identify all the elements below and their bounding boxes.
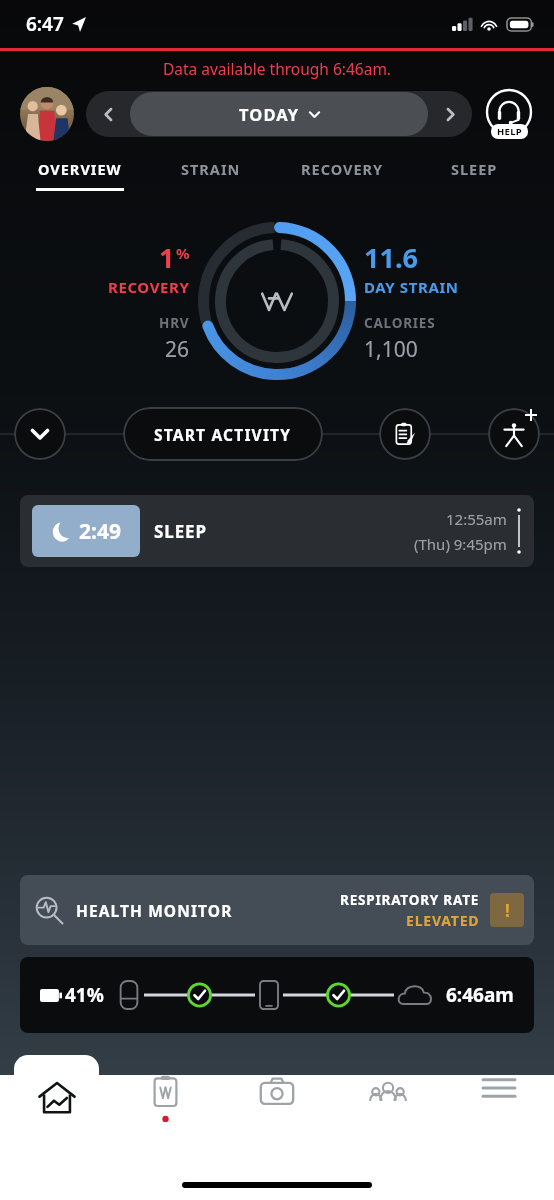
button[interactable] <box>197 221 357 381</box>
staticText: 2:49 <box>79 517 121 546</box>
button[interactable]: RECOVERY <box>276 159 408 191</box>
button[interactable]: STRAIN <box>145 159 276 191</box>
button[interactable]: Expand <box>14 408 66 460</box>
button[interactable]: Profile <box>20 87 74 141</box>
button[interactable]: 2:49 <box>20 495 534 567</box>
staticText: SLEEP <box>154 520 207 543</box>
button[interactable]: Community <box>332 1075 443 1137</box>
button[interactable]: SLEEP <box>408 159 540 191</box>
staticText: 26 <box>165 335 190 364</box>
staticText: STRAIN <box>181 159 241 179</box>
staticText: 6:47 <box>26 11 64 37</box>
staticText: Data available through 6:46am. <box>0 58 554 79</box>
staticText: (Thu) 9:45pm <box>414 534 507 554</box>
staticText: START ACTIVITY <box>154 424 292 445</box>
button[interactable]: Journal <box>110 1075 221 1137</box>
staticText: ! <box>505 899 510 922</box>
staticText: 6:46am <box>446 982 514 1008</box>
button[interactable]: Home <box>14 1055 99 1137</box>
staticText: 11.6 <box>364 239 418 276</box>
button[interactable]: OVERVIEW <box>14 159 145 191</box>
staticText: RECOVERY <box>301 159 384 179</box>
button[interactable]: Menu <box>443 1075 554 1137</box>
button[interactable]: Camera <box>221 1075 332 1137</box>
staticText: ELEVATED <box>406 911 480 930</box>
staticText: 1 <box>159 239 175 276</box>
button[interactable]: TODAY <box>130 92 428 136</box>
button[interactable]: Add activity <box>488 408 540 460</box>
staticText: HEALTH MONITOR <box>76 900 233 921</box>
staticText: 12:55am <box>446 509 507 529</box>
staticText: HELP <box>497 125 522 138</box>
staticText: RECOVERY <box>108 277 190 297</box>
button[interactable]: Help <box>484 89 534 139</box>
button[interactable]: 41% <box>20 957 534 1033</box>
staticText: 41% <box>65 982 104 1008</box>
button[interactable]: START ACTIVITY <box>123 407 323 461</box>
staticText: % <box>176 243 190 263</box>
staticText: HRV <box>159 314 190 332</box>
staticText: SLEEP <box>451 159 498 179</box>
button[interactable]: Previous day <box>86 91 130 137</box>
button[interactable]: Next day <box>428 91 472 137</box>
staticText: DAY STRAIN <box>364 277 459 297</box>
staticText: CALORIES <box>364 314 436 332</box>
staticText: OVERVIEW <box>38 159 122 179</box>
staticText: RESPIRATORY RATE <box>340 891 480 909</box>
button[interactable]: HEALTH MONITOR <box>20 875 534 945</box>
button[interactable]: Journal <box>379 408 431 460</box>
staticText: 1,100 <box>364 335 418 364</box>
staticText: TODAY <box>239 103 300 125</box>
